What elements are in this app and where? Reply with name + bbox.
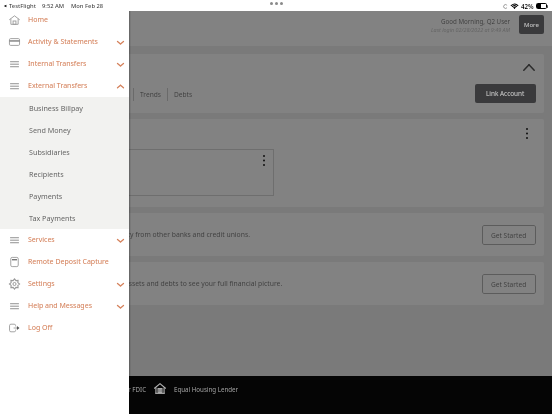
staticText: Internal Transfers bbox=[28, 59, 87, 69]
button[interactable]: Link Account bbox=[475, 84, 536, 103]
button[interactable]: Trends bbox=[134, 87, 167, 102]
button[interactable]: Account options bbox=[263, 155, 265, 166]
button[interactable]: Services bbox=[0, 229, 129, 251]
button[interactable]: Help and Messages bbox=[0, 295, 129, 317]
button[interactable]: Get Started bbox=[482, 225, 536, 245]
staticText: Payments bbox=[29, 191, 63, 201]
staticText: Securely view balances and transaction a… bbox=[0, 230, 250, 239]
button[interactable]: Internal Transfers bbox=[0, 53, 129, 75]
staticText: Link Account bbox=[486, 89, 525, 98]
staticText: Tax Payments bbox=[29, 213, 76, 223]
button[interactable]: Send Money bbox=[0, 119, 129, 141]
staticText: Equal Housing Lender bbox=[174, 385, 239, 393]
button[interactable]: Log Off bbox=[0, 317, 129, 339]
staticText: Settings bbox=[28, 279, 55, 289]
button[interactable]: Debts bbox=[168, 87, 199, 102]
staticText: 9:52 AM bbox=[42, 2, 65, 10]
button[interactable]: Recipients bbox=[0, 163, 129, 185]
button[interactable]: Tax Payments bbox=[0, 207, 129, 229]
staticText: Track and manage all your assets and deb… bbox=[39, 279, 283, 288]
staticText: Remote Deposit Capture bbox=[28, 257, 109, 267]
staticText: Activity & Statements bbox=[28, 37, 98, 47]
button[interactable]: Collapse bbox=[519, 58, 538, 77]
staticText: Recipients bbox=[29, 169, 64, 179]
staticText: Get Started bbox=[491, 280, 527, 289]
staticText: Member FDIC bbox=[106, 385, 147, 393]
staticText: External Transfers bbox=[28, 81, 88, 91]
staticText: Home bbox=[28, 15, 48, 25]
staticText: Subsidiaries bbox=[29, 147, 70, 157]
button[interactable]: Get Started bbox=[482, 274, 536, 294]
staticText: 42% bbox=[521, 2, 534, 10]
button[interactable]: Subsidiaries bbox=[0, 141, 129, 163]
staticText: Trends bbox=[140, 90, 161, 99]
button[interactable]: More options bbox=[526, 128, 528, 139]
staticText: Help and Messages bbox=[28, 301, 92, 311]
button[interactable]: Business Billpay bbox=[0, 97, 129, 119]
staticText: More bbox=[524, 21, 539, 29]
button[interactable]: More bbox=[519, 15, 544, 34]
staticText: TestFlight bbox=[9, 2, 36, 10]
staticText: Send Money bbox=[29, 125, 71, 135]
staticText: Last login 02/28/2022 at 9:49 AM bbox=[431, 26, 511, 33]
staticText: Get Started bbox=[491, 231, 527, 240]
staticText: Mon Feb 28 bbox=[71, 2, 104, 10]
button[interactable]: Activity & Statements bbox=[0, 31, 129, 53]
button[interactable]: Home bbox=[0, 9, 129, 31]
staticText: Services bbox=[28, 235, 55, 245]
staticText: Good Morning, Q2 User bbox=[441, 17, 511, 25]
staticText: Debts bbox=[174, 90, 193, 99]
button[interactable]: Payments bbox=[0, 185, 129, 207]
button[interactable]: Remote Deposit Capture bbox=[0, 251, 129, 273]
button[interactable]: External Transfers bbox=[0, 75, 129, 97]
staticText: Business Billpay bbox=[29, 103, 84, 113]
staticText: Log Off bbox=[28, 323, 53, 333]
button[interactable]: Settings bbox=[0, 273, 129, 295]
